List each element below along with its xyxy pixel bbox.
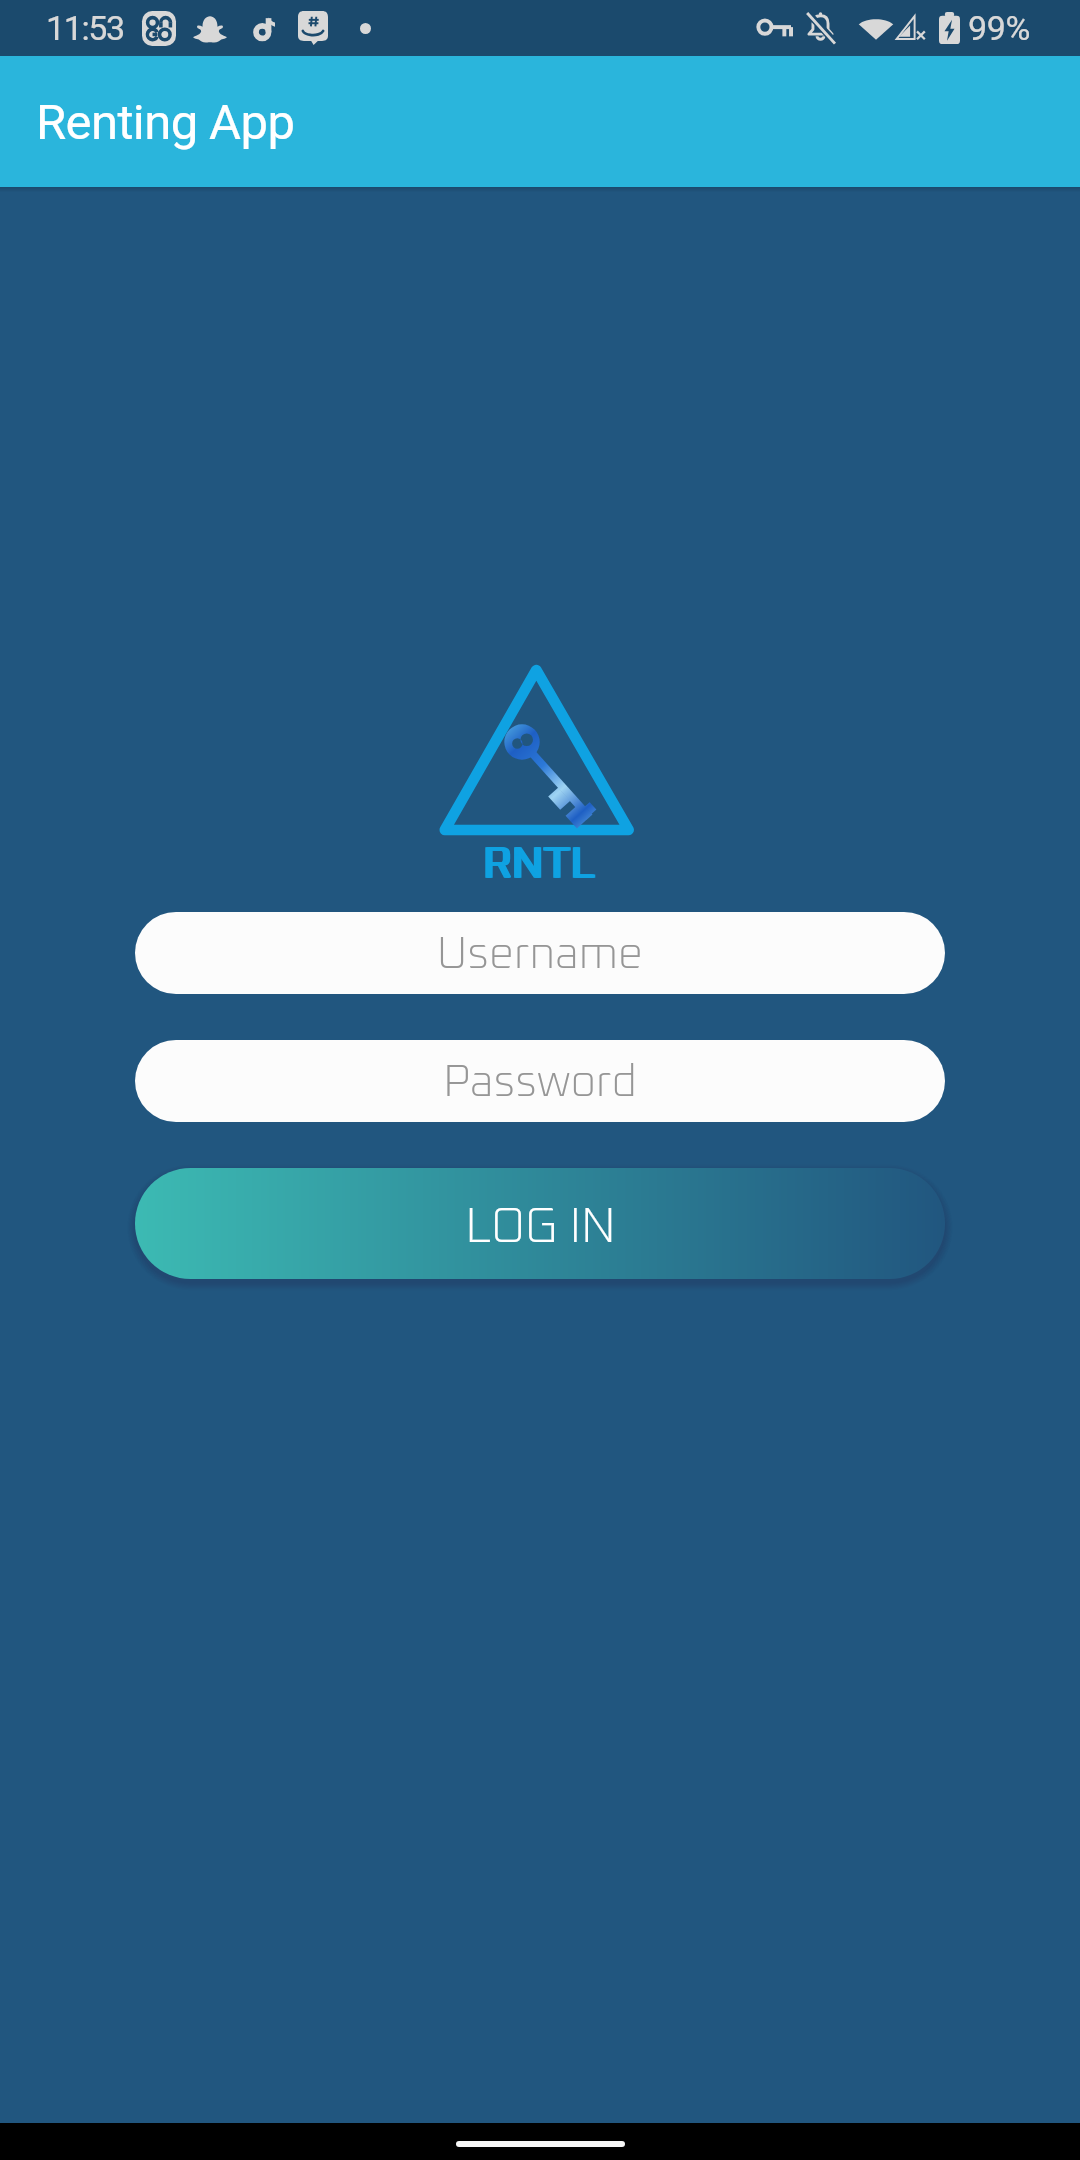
button[interactable]: LOG IN <box>135 1168 945 1279</box>
staticText: RNTL <box>483 844 595 886</box>
staticText: RNTL <box>486 844 598 886</box>
staticText: Renting App <box>36 94 295 151</box>
staticText: LOG IN <box>465 1203 616 1252</box>
staticText: 99% <box>968 8 1030 48</box>
staticText: RNTL <box>482 844 594 886</box>
staticText: Username <box>437 933 643 977</box>
staticText: RNTL <box>484 844 596 886</box>
button[interactable]: Password <box>135 1040 945 1122</box>
button[interactable]: Renting App <box>0 56 1080 187</box>
staticText: RNTL <box>485 844 597 886</box>
staticText: 11:53 <box>46 8 124 48</box>
button[interactable]: Username <box>135 912 945 994</box>
staticText: Password <box>443 1061 637 1105</box>
